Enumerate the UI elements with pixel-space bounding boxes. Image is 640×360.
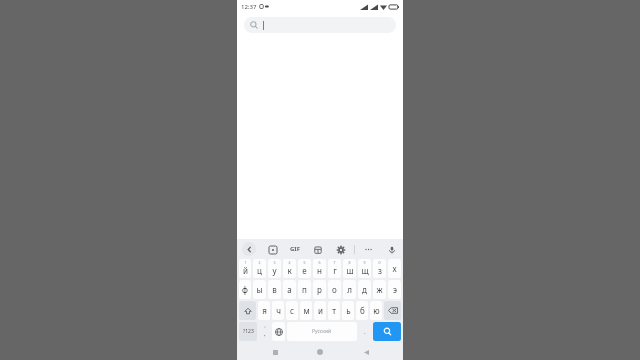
staticText: в [272,284,277,295]
other: Search [250,21,258,29]
staticText: т [332,305,336,316]
button[interactable]: ь [342,301,354,320]
staticText: , [264,330,266,338]
button[interactable]: Home [312,344,328,360]
staticText: э [393,284,397,295]
button[interactable]: 6 [313,259,326,278]
button[interactable]: Backspace [384,301,401,320]
button[interactable]: 0 [373,259,386,278]
button[interactable]: х [388,259,401,278]
staticText: 3 [273,260,276,265]
button[interactable]: 2 [253,259,266,278]
staticText: 2 [258,260,261,265]
button[interactable]: р [313,280,326,299]
button[interactable]: Change language [272,322,285,341]
button[interactable]: п [298,280,311,299]
button[interactable]: ж [373,280,386,299]
button[interactable]: ?123 [239,322,257,341]
button[interactable]: Period [359,322,371,341]
button[interactable]: 1 [239,259,251,278]
staticText: б [360,305,365,316]
staticText: р [317,284,322,295]
button[interactable]: 8 [343,259,356,278]
button[interactable]: м [300,301,312,320]
button[interactable]: 5 [298,259,311,278]
button[interactable]: Back [358,344,374,360]
button[interactable]: и [314,301,326,320]
button[interactable]: с [286,301,298,320]
button[interactable]: я [258,301,270,320]
button[interactable]: Stickers [266,243,279,256]
button[interactable]: Search [244,17,396,33]
staticText: щ [361,265,369,276]
staticText: 12:37 [241,3,257,11]
staticText: ц [257,265,262,276]
button[interactable]: Русский [287,322,357,341]
button[interactable]: Voice input [385,243,398,256]
staticText: к [287,265,292,276]
button[interactable]: Comma [259,322,270,341]
staticText: я [262,305,267,316]
staticText: ы [256,284,263,295]
button[interactable]: 3 [268,259,281,278]
button[interactable]: Settings [334,243,347,256]
staticText: м [303,305,310,316]
staticText: ф [242,284,248,295]
button[interactable]: Search [373,322,401,341]
button[interactable]: Clipboard [311,243,324,256]
staticText: н [317,265,322,276]
staticText: ж [376,284,383,295]
button[interactable]: 4 [283,259,296,278]
staticText: 0 [378,260,381,265]
button[interactable]: 7 [328,259,341,278]
button[interactable]: GIF [289,244,301,254]
button[interactable]: Recent apps [267,344,283,360]
button[interactable]: б [356,301,368,320]
button[interactable]: т [328,301,340,320]
button[interactable]: Back [242,242,256,256]
staticText: 9 [363,260,366,265]
button[interactable]: о [328,280,341,299]
button[interactable]: л [343,280,356,299]
staticText: 5 [303,260,306,265]
button[interactable]: д [358,280,371,299]
staticText: с [290,305,294,316]
staticText: ю [373,305,380,316]
button[interactable]: ч [272,301,284,320]
staticText: 6 [318,260,321,265]
button[interactable]: 9 [358,259,371,278]
button[interactable]: а [283,280,296,299]
staticText: л [347,284,352,295]
button[interactable]: Shift [239,301,256,320]
staticText: о [332,284,337,295]
staticText: ?123 [243,328,254,335]
button[interactable]: ы [253,280,266,299]
staticText: х [392,263,397,274]
staticText: п [302,284,307,295]
button[interactable]: ф [239,280,251,299]
staticText: е [302,265,307,276]
button[interactable]: ю [370,301,382,320]
staticText: ч [276,305,281,316]
staticText: . [364,328,366,336]
staticText: 8 [348,260,351,265]
staticText: Русский [312,328,332,335]
staticText: д [362,284,367,295]
staticText: ш [346,265,354,276]
staticText: а [287,284,292,295]
staticText: ° [264,325,266,330]
staticText: 4 [288,260,291,265]
staticText: ь [346,305,351,316]
staticText: GIF [290,245,300,253]
button[interactable]: More options [362,243,375,256]
button[interactable]: э [388,280,401,299]
staticText: у [272,265,277,276]
staticText: з [378,265,382,276]
staticText: 7 [333,260,336,265]
button[interactable]: в [268,280,281,299]
staticText: г [333,265,337,276]
staticText: й [243,265,248,276]
staticText: 1 [244,260,247,265]
staticText: и [318,305,323,316]
